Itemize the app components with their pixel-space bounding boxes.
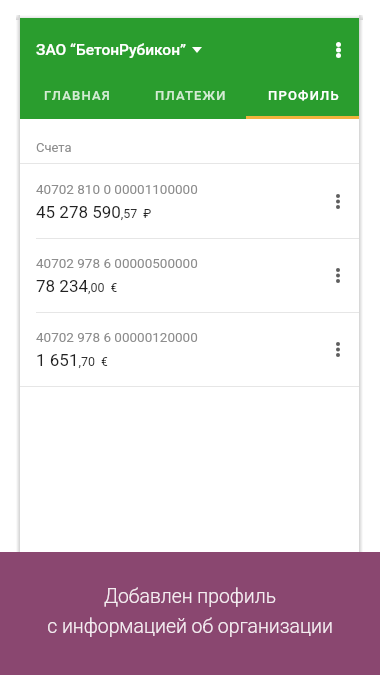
- staticText: Счета: [36, 140, 72, 155]
- staticText: ЗАО “БетонРубикон”: [36, 41, 186, 59]
- staticText: 1 651,70 €: [36, 350, 108, 370]
- button[interactable]: 40702 810 0 00001100000: [20, 164, 359, 238]
- staticText: ПЛАТЕЖИ: [155, 88, 227, 103]
- staticText: 40702 978 6 00000120000: [36, 329, 198, 345]
- button[interactable]: ПЛАТЕЖИ: [133, 74, 246, 119]
- staticText: 40702 978 6 00000500000: [36, 255, 198, 271]
- button[interactable]: Account options: [311, 239, 359, 312]
- button[interactable]: ГЛАВНАЯ: [20, 74, 133, 119]
- staticText: 78 234,00 €: [36, 276, 118, 296]
- staticText: ПРОФИЛЬ: [268, 88, 340, 103]
- staticText: Добавлен профиль с информацией об органи…: [47, 585, 333, 637]
- button[interactable]: ЗАО “БетонРубикон”: [20, 18, 216, 74]
- button[interactable]: Account options: [311, 313, 359, 386]
- button[interactable]: More options: [311, 18, 359, 74]
- staticText: ГЛАВНАЯ: [44, 88, 112, 103]
- button[interactable]: 40702 978 6 00000500000: [20, 239, 359, 312]
- staticText: 40702 810 0 00001100000: [36, 181, 198, 197]
- button[interactable]: ПРОФИЛЬ: [246, 74, 359, 119]
- staticText: 45 278 590,57 ₽: [36, 202, 152, 222]
- button[interactable]: 40702 978 6 00000120000: [20, 313, 359, 386]
- button[interactable]: Account options: [311, 164, 359, 238]
